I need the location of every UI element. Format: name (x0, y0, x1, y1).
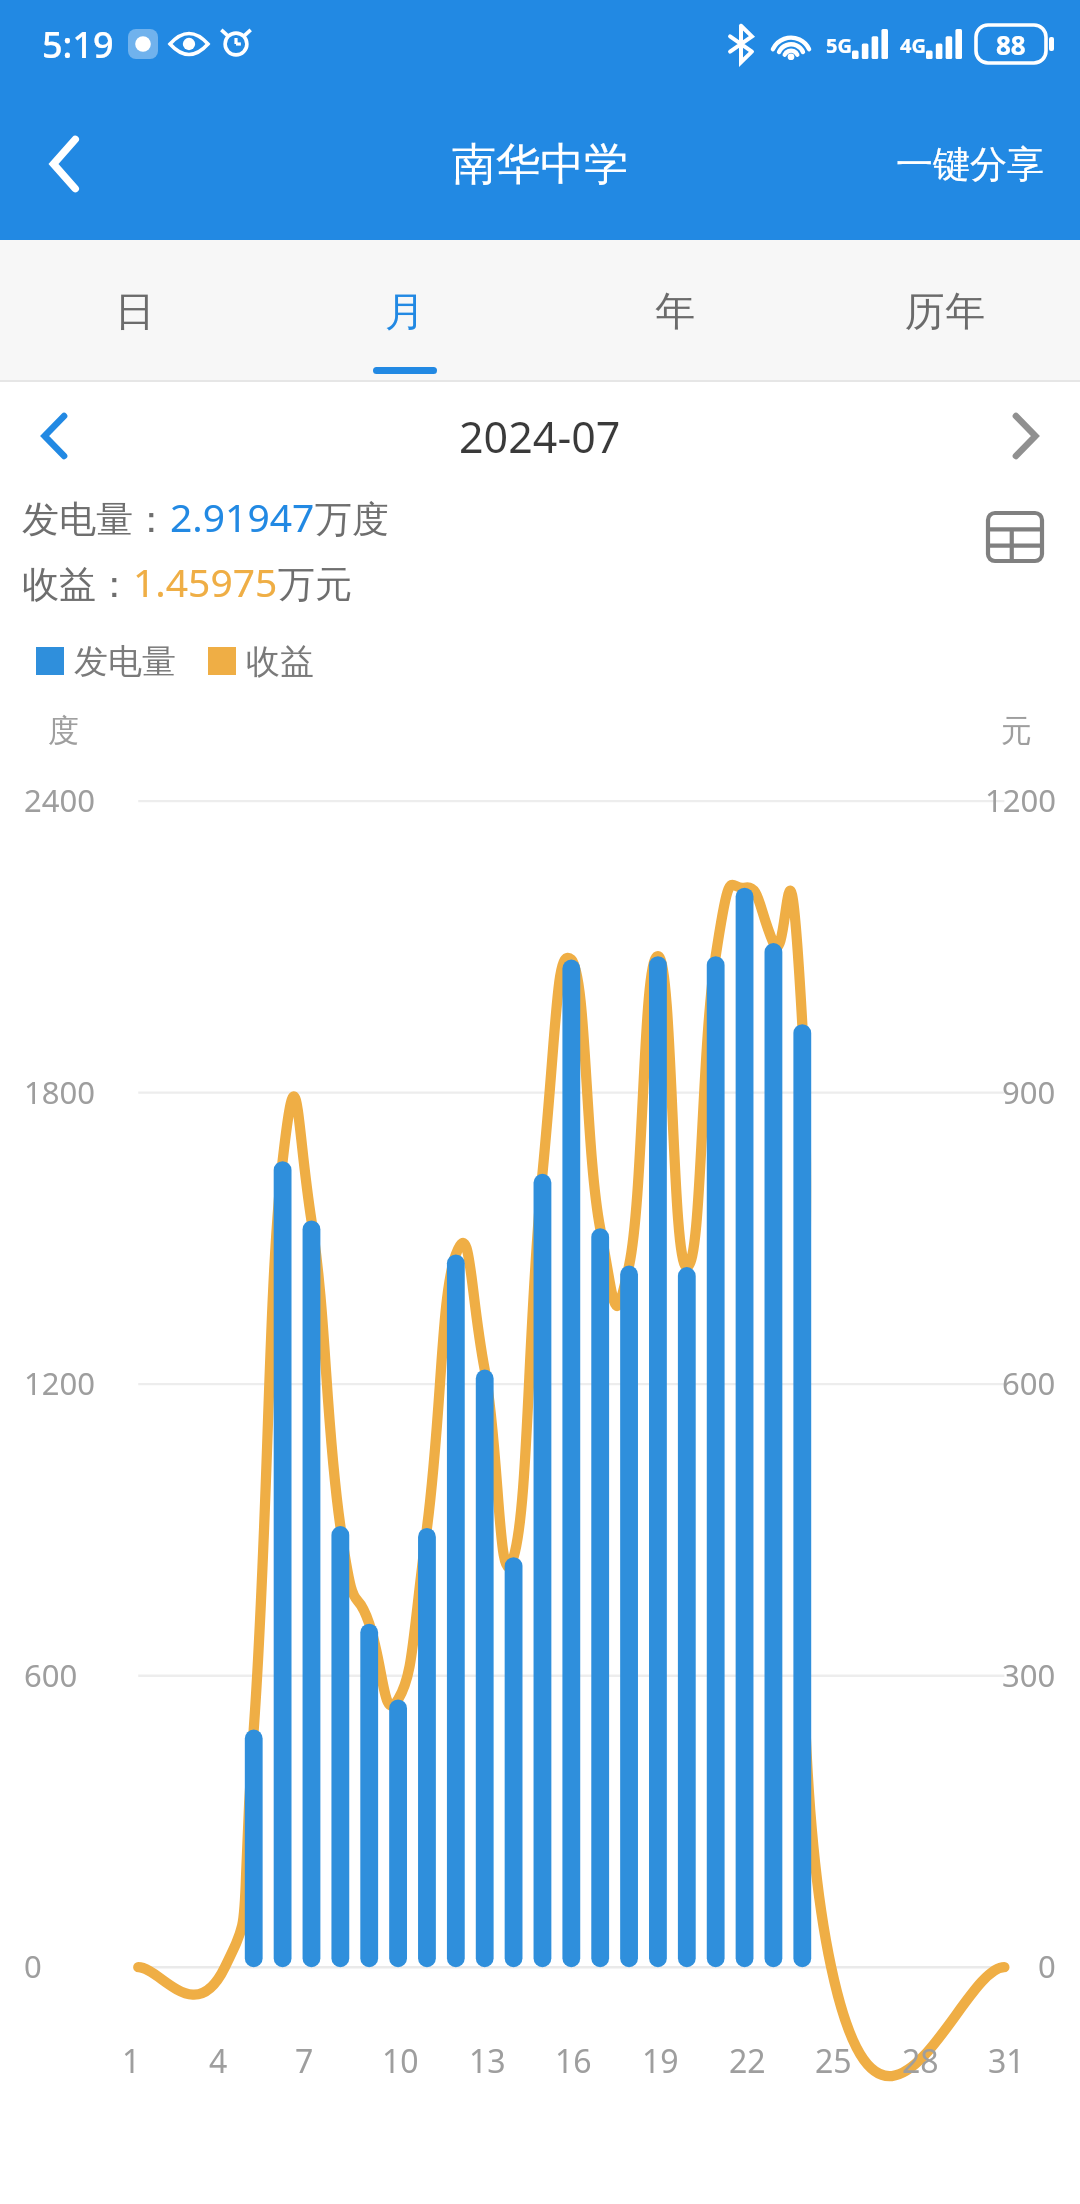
staticText: 10 (382, 2039, 419, 2083)
staticText: 收益： (22, 561, 133, 608)
staticText: 收益 (246, 640, 314, 683)
staticText: 1200 (24, 1362, 95, 1404)
staticText: 5G (826, 32, 852, 59)
staticText: 7 (295, 2039, 314, 2083)
staticText: 4G (900, 32, 926, 59)
staticText: 度 (48, 711, 79, 750)
staticText: 历年 (905, 286, 985, 336)
button[interactable]: Back (0, 88, 130, 240)
staticText: 13 (469, 2039, 506, 2083)
button[interactable]: Next month (970, 382, 1080, 490)
staticText: 一键分享 (896, 141, 1044, 188)
staticText: 日 (115, 286, 155, 336)
staticText: 900 (1002, 1071, 1056, 1113)
button[interactable]: 一键分享 (860, 88, 1080, 240)
staticText: 600 (1002, 1362, 1056, 1404)
staticText: 发电量 (74, 640, 176, 683)
staticText: 300 (1002, 1654, 1056, 1696)
staticText: 2.91947 (170, 490, 315, 543)
staticText: 元 (1001, 711, 1032, 750)
staticText: 南华中学 (452, 137, 628, 192)
staticText: 5:19 (42, 20, 114, 69)
staticText: 1 (122, 2039, 141, 2083)
staticText: 28 (902, 2039, 939, 2083)
button[interactable]: 日 (0, 240, 270, 382)
button[interactable]: 月 (270, 240, 540, 382)
staticText: 0 (1038, 1945, 1056, 1987)
staticText: 万元 (278, 561, 352, 608)
staticText: 1.45975 (133, 555, 278, 608)
staticText: 年 (655, 286, 695, 336)
staticText: 31 (988, 2039, 1025, 2083)
staticText: 万度 (315, 496, 389, 543)
staticText: 25 (815, 2039, 852, 2083)
staticText: 月 (385, 286, 425, 336)
staticText: 1200 (985, 779, 1056, 821)
staticText: 4 (209, 2039, 228, 2083)
staticText: 1800 (24, 1071, 95, 1113)
staticText: 600 (24, 1654, 78, 1696)
button[interactable]: Previous month (0, 382, 110, 490)
staticText: 88 (996, 27, 1026, 62)
button[interactable]: 历年 (810, 240, 1080, 382)
staticText: 16 (555, 2039, 592, 2083)
button[interactable]: 年 (540, 240, 810, 382)
staticText: 0 (24, 1945, 42, 1987)
staticText: 2024-07 (459, 407, 621, 466)
staticText: 2400 (24, 779, 95, 821)
button[interactable]: Table view (972, 494, 1058, 580)
staticText: 19 (642, 2039, 679, 2083)
staticText: 发电量： (22, 496, 170, 543)
staticText: 22 (729, 2039, 766, 2083)
